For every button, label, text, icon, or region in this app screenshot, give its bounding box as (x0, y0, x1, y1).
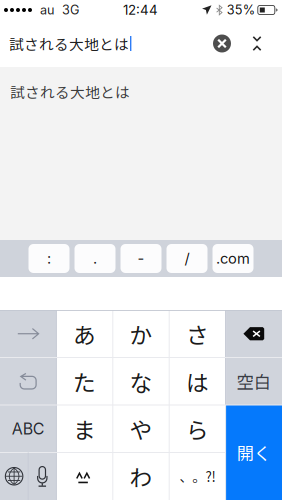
button[interactable]: / (166, 244, 207, 273)
staticText: さ (186, 317, 209, 350)
staticText: た (73, 365, 96, 398)
staticText: 試される大地とは (9, 33, 129, 54)
staticText: ら (186, 412, 209, 445)
button[interactable]: な (113, 357, 169, 405)
button[interactable]: Next keyboard (0, 452, 28, 500)
button[interactable]: Delete (226, 310, 282, 357)
staticText: 空白 (237, 369, 271, 394)
button[interactable]: Next (0, 310, 56, 357)
button[interactable]: ABC (0, 405, 56, 452)
staticText: au (32, 2, 54, 18)
staticText: な (129, 365, 152, 398)
staticText: ま (73, 412, 96, 445)
staticText: - (137, 250, 144, 267)
button[interactable]: ら (169, 405, 226, 452)
button[interactable]: わ (113, 452, 169, 500)
staticText: わ (129, 460, 152, 493)
button[interactable]: : (28, 244, 69, 273)
button[interactable]: か (113, 310, 169, 357)
button[interactable]: 空白 (226, 357, 282, 405)
staticText: 3G (54, 2, 79, 18)
staticText: か (129, 317, 152, 350)
button[interactable]: 開く (226, 405, 282, 500)
button[interactable]: た (56, 357, 113, 405)
staticText: 、。?! (179, 467, 215, 486)
staticText: や (129, 412, 152, 445)
button[interactable]: あ (56, 310, 113, 357)
staticText: 試される大地とは (10, 81, 130, 102)
button[interactable]: Undo (0, 357, 56, 405)
staticText: : (47, 250, 51, 267)
staticText: .com (216, 250, 250, 267)
button[interactable]: Clear text (207, 20, 237, 67)
button[interactable]: や (113, 405, 169, 452)
staticText: あ (73, 317, 96, 350)
button[interactable]: ま (56, 405, 113, 452)
staticText: 開く (237, 440, 271, 465)
staticText: . (93, 250, 97, 267)
staticText: は (186, 365, 209, 398)
staticText: / (184, 250, 189, 267)
button[interactable]: Hide keyboard (244, 20, 270, 67)
button[interactable]: .com (212, 244, 253, 273)
staticText: ABC (12, 419, 45, 438)
button[interactable]: は (169, 357, 226, 405)
button[interactable]: - (120, 244, 161, 273)
button[interactable]: 、。?! (169, 452, 226, 500)
staticText: 35% (227, 2, 255, 18)
button[interactable]: Dictation (28, 452, 56, 500)
button[interactable]: Emoticons (56, 452, 113, 500)
button[interactable]: . (74, 244, 115, 273)
staticText: 12:44 (123, 2, 158, 18)
button[interactable]: さ (169, 310, 226, 357)
